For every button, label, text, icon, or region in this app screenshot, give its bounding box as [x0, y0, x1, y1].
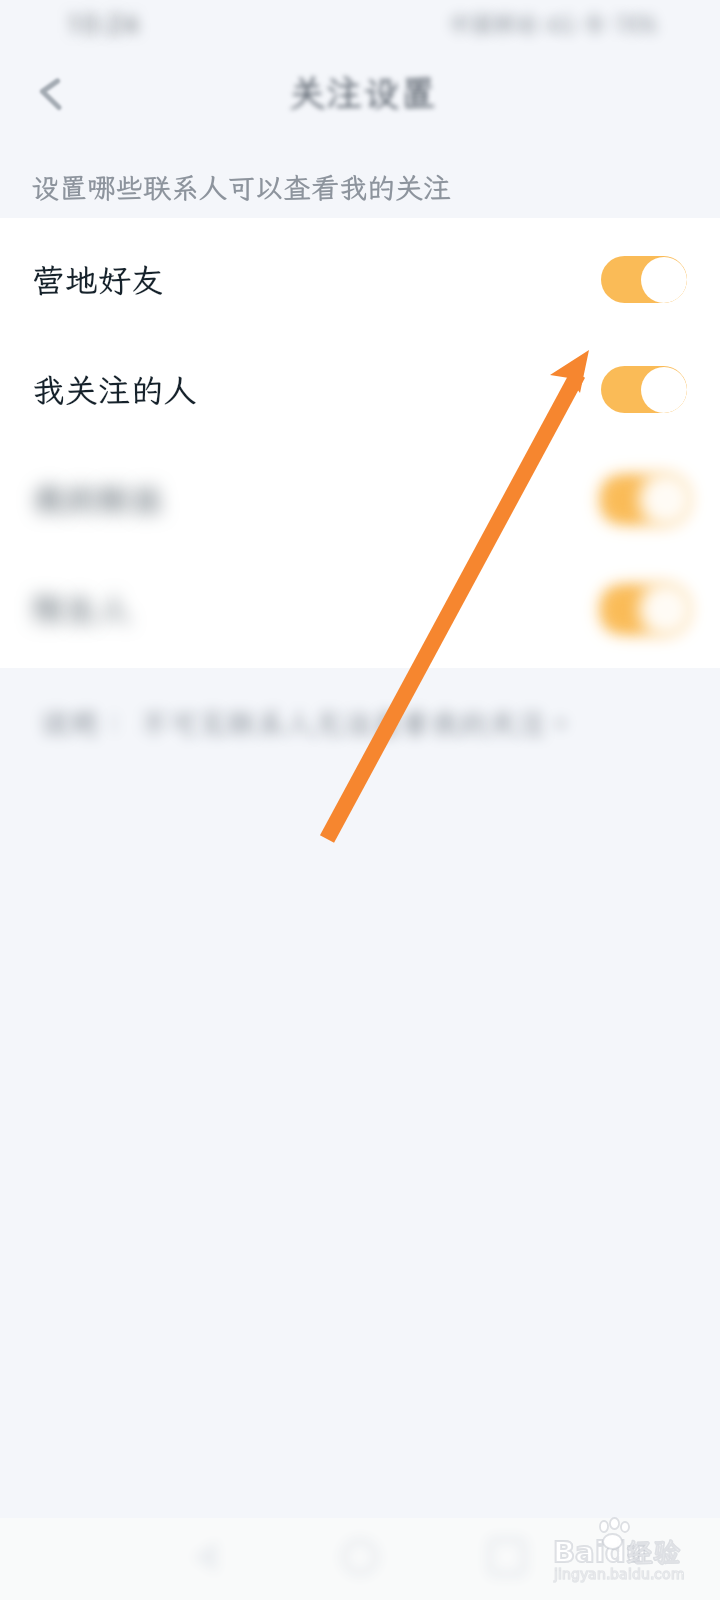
button[interactable]: Toggle 我的粉丝: [601, 476, 687, 523]
button[interactable]: 陌生人: [0, 572, 720, 646]
button[interactable]: 我关注的人: [0, 352, 720, 426]
button[interactable]: Toggle 陌生人: [601, 586, 687, 633]
staticText: 关注设置: [289, 70, 434, 117]
button[interactable]: Back: [14, 62, 74, 122]
button[interactable]: Toggle 我关注的人: [601, 366, 687, 413]
staticText: 陌生人: [32, 588, 130, 631]
button[interactable]: Toggle 营地好友: [601, 256, 687, 303]
staticText: 设置哪些联系人可以查看我的关注: [31, 168, 452, 205]
button[interactable]: 营地好友: [0, 242, 720, 316]
staticText: 我关注的人: [32, 368, 195, 411]
staticText: 我的粉丝: [32, 478, 163, 521]
staticText: 营地好友: [32, 258, 163, 301]
button[interactable]: 我的粉丝: [0, 462, 720, 536]
